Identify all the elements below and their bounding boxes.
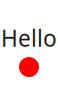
- staticText: Hello: [1, 23, 57, 53]
